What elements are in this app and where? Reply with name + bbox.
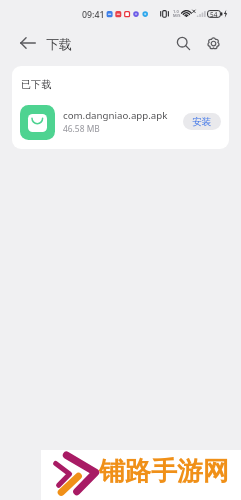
button[interactable]: com.dangniao.app.apk — [12, 100, 229, 145]
button[interactable]: 安装 — [183, 113, 221, 130]
staticText: 46.58 MB — [63, 123, 100, 134]
button[interactable]: Back — [13, 28, 43, 58]
button[interactable]: Search — [168, 28, 198, 58]
staticText: 铺路手游网 — [99, 455, 229, 488]
staticText: 54 — [210, 10, 218, 19]
button[interactable]: Settings — [198, 28, 228, 58]
staticText: com.dangniao.app.apk — [63, 109, 168, 122]
staticText: 1.0 M/S — [173, 9, 181, 19]
staticText: 09:41 — [82, 9, 105, 21]
staticText: 安装 — [192, 116, 212, 128]
staticText: 已下载 — [21, 78, 52, 91]
staticText: 下载 — [46, 36, 72, 52]
